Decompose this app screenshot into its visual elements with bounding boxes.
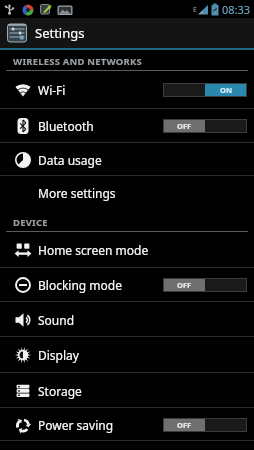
staticText: 08:33 — [222, 2, 251, 17]
staticText: Bluetooth — [38, 118, 94, 134]
staticText: Home screen mode — [38, 242, 149, 258]
button[interactable]: Power saving — [0, 408, 254, 441]
staticText: OFF — [177, 280, 192, 290]
staticText: Blocking mode — [38, 277, 122, 293]
staticText: Display — [38, 347, 79, 363]
staticText: ON — [220, 85, 233, 95]
staticText: Wi-Fi — [38, 82, 66, 98]
staticText: Storage — [38, 383, 82, 399]
button[interactable]: Sound — [0, 302, 254, 337]
button[interactable]: Blocking mode — [0, 268, 254, 302]
button[interactable]: Wi-Fi — [0, 71, 254, 109]
staticText: More settings — [38, 185, 116, 201]
button[interactable]: OFF — [163, 418, 247, 432]
button[interactable]: Home screen mode — [0, 232, 254, 268]
button[interactable]: OFF — [163, 278, 247, 292]
staticText: WIRELESS AND NETWORKS — [13, 55, 142, 68]
staticText: Data usage — [38, 152, 102, 168]
staticText: Sound — [38, 312, 75, 328]
button[interactable]: ON — [163, 83, 247, 97]
button[interactable]: Storage — [0, 373, 254, 408]
button[interactable]: Display — [0, 337, 254, 373]
staticText: DEVICE — [13, 216, 48, 229]
staticText: OFF — [177, 420, 192, 430]
staticText: Power saving — [38, 417, 114, 433]
staticText: E — [193, 5, 197, 15]
button[interactable]: More settings — [0, 176, 254, 210]
button[interactable]: OFF — [163, 119, 247, 133]
button[interactable]: Bluetooth — [0, 109, 254, 143]
staticText: OFF — [177, 121, 192, 131]
button[interactable]: Settings — [0, 18, 254, 48]
button[interactable]: Data usage — [0, 143, 254, 176]
staticText: Settings — [35, 24, 85, 42]
